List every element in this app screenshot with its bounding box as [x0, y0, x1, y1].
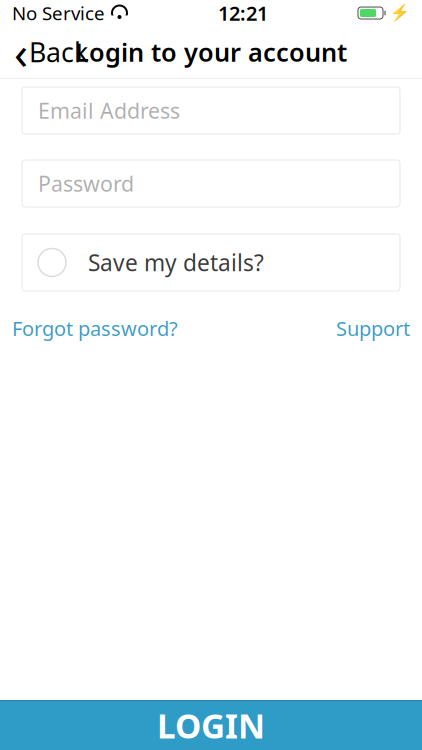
- staticText: Forgot password?: [12, 315, 178, 342]
- button[interactable]: ‹: [0, 27, 102, 77]
- staticText: Back: [29, 34, 88, 70]
- button[interactable]: Support: [336, 311, 410, 346]
- button[interactable]: LOGIN: [0, 700, 422, 750]
- staticText: No Service: [12, 1, 105, 25]
- staticText: Support: [336, 315, 410, 342]
- button[interactable]: Save my details?: [22, 234, 400, 291]
- staticText: 12:21: [218, 0, 268, 26]
- button[interactable]: Forgot password?: [12, 311, 178, 346]
- staticText: Email Address: [38, 96, 180, 125]
- staticText: ⚡: [390, 4, 410, 22]
- button[interactable]: Password: [22, 160, 400, 207]
- staticText: Save my details?: [88, 247, 264, 277]
- staticText: Login to your account: [75, 35, 347, 69]
- staticText: LOGIN: [157, 703, 265, 748]
- staticText: ‹: [14, 22, 28, 82]
- button[interactable]: Email Address: [22, 87, 400, 134]
- staticText: Password: [38, 169, 134, 198]
